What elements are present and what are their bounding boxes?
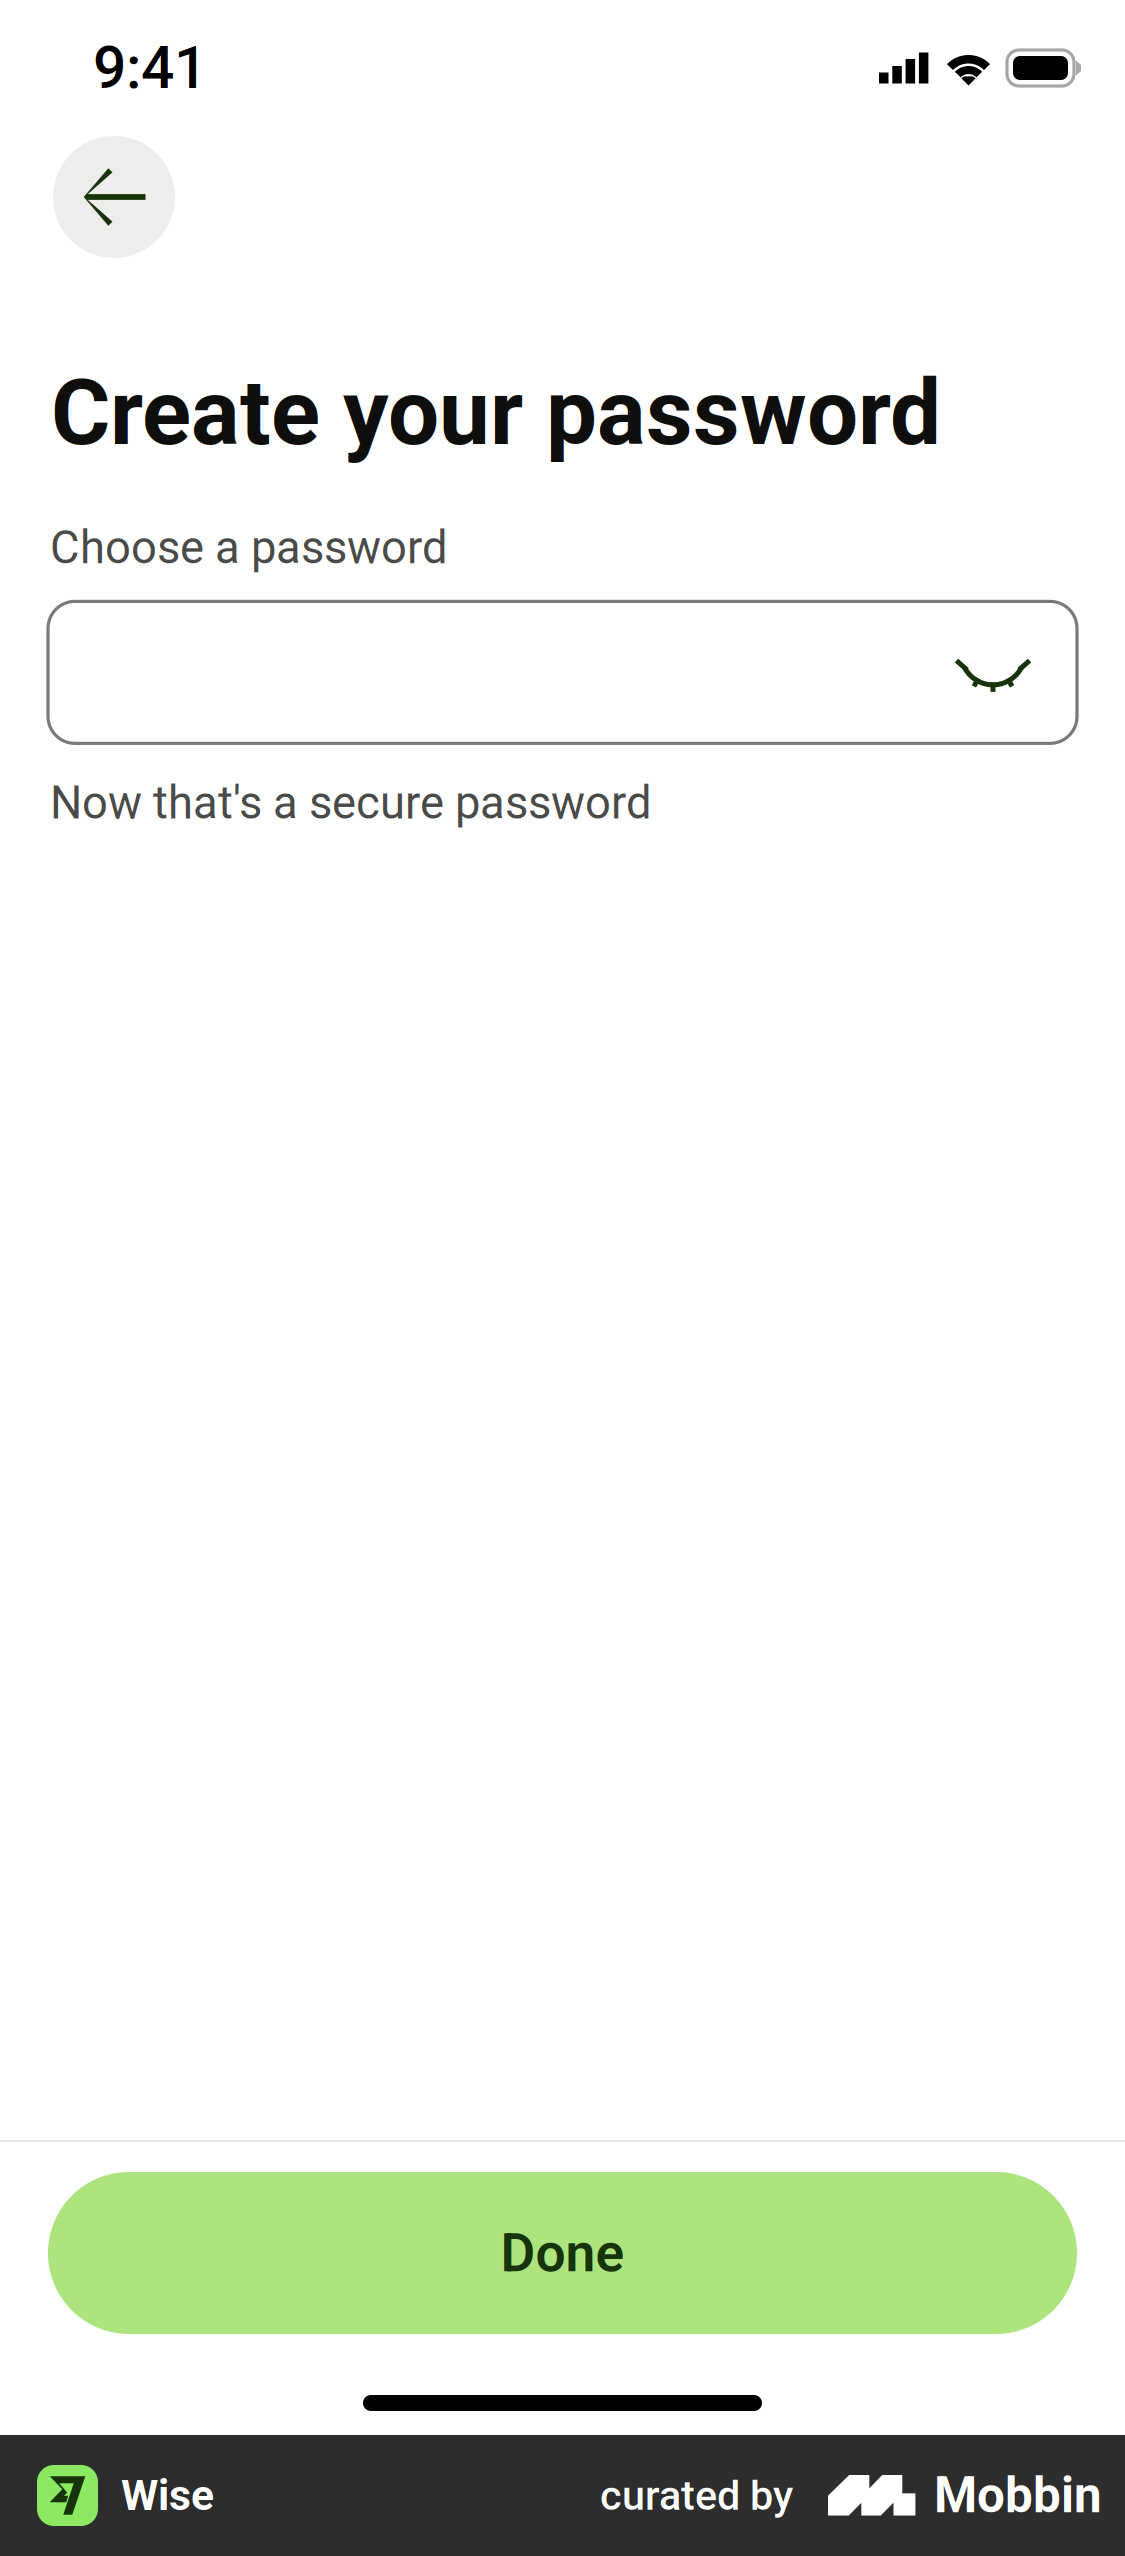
staticText: Choose a password <box>50 521 448 574</box>
staticText: Mobbin <box>934 2467 1102 2524</box>
button[interactable]: Show password <box>927 606 1059 738</box>
staticText: Now that's a secure password <box>50 776 652 829</box>
staticText: Wise <box>121 2470 214 2520</box>
staticText: 9:41 <box>93 34 207 102</box>
button[interactable]: Done <box>48 2172 1077 2334</box>
staticText: Create your password <box>51 360 941 466</box>
staticText: Done <box>500 2222 624 2284</box>
staticText: curated by <box>600 2471 793 2520</box>
button[interactable]: Back <box>53 136 175 258</box>
